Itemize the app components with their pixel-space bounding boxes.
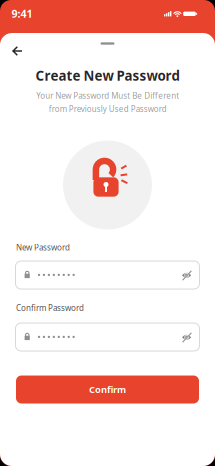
staticText: Your New Password Must Be Different from…: [36, 90, 179, 114]
staticText: New Password: [16, 242, 70, 253]
button[interactable]: Back: [6, 40, 28, 62]
button[interactable]: Show password: [176, 264, 198, 286]
staticText: Confirm: [89, 383, 126, 396]
button[interactable]: Password entry: [15, 322, 200, 351]
staticText: Confirm Password: [16, 303, 84, 313]
staticText: Create New Password: [35, 67, 179, 84]
button[interactable]: Password entry: [15, 260, 200, 289]
staticText: 9:41: [11, 6, 32, 21]
button[interactable]: Show password: [176, 326, 198, 348]
button[interactable]: Confirm: [16, 375, 199, 403]
